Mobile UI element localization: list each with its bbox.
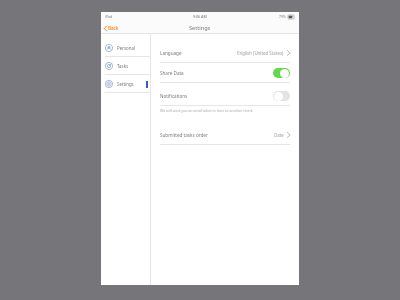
staticText: 9:06 AM [193,14,207,19]
staticText: Settings [189,24,211,32]
staticText: iPad [105,14,113,19]
staticText: Tasks [117,63,129,69]
staticText: English (United States) [237,50,284,56]
button[interactable]: Language [160,43,290,62]
button[interactable]: Settings [101,75,150,93]
staticText: Language [160,50,182,56]
button[interactable]: Share Data [160,63,290,82]
button[interactable] [273,68,290,78]
button[interactable] [273,91,290,101]
staticText: Back [108,25,119,31]
button[interactable]: Tasks [101,57,150,75]
staticText: Share Data [160,70,184,76]
staticText: We will send you an email when is time t… [160,108,253,113]
staticText: Personal [117,45,136,51]
staticText: Settings [117,81,134,87]
staticText: Date [274,132,284,138]
button[interactable]: Submitted tasks order [160,125,290,144]
button[interactable]: Personal [101,39,150,57]
staticText: Notifications [160,93,188,99]
staticText: 79% [279,14,286,19]
button[interactable]: Notifications [160,86,290,105]
button[interactable]: Back [104,25,119,31]
staticText: Submitted tasks order [160,132,208,138]
